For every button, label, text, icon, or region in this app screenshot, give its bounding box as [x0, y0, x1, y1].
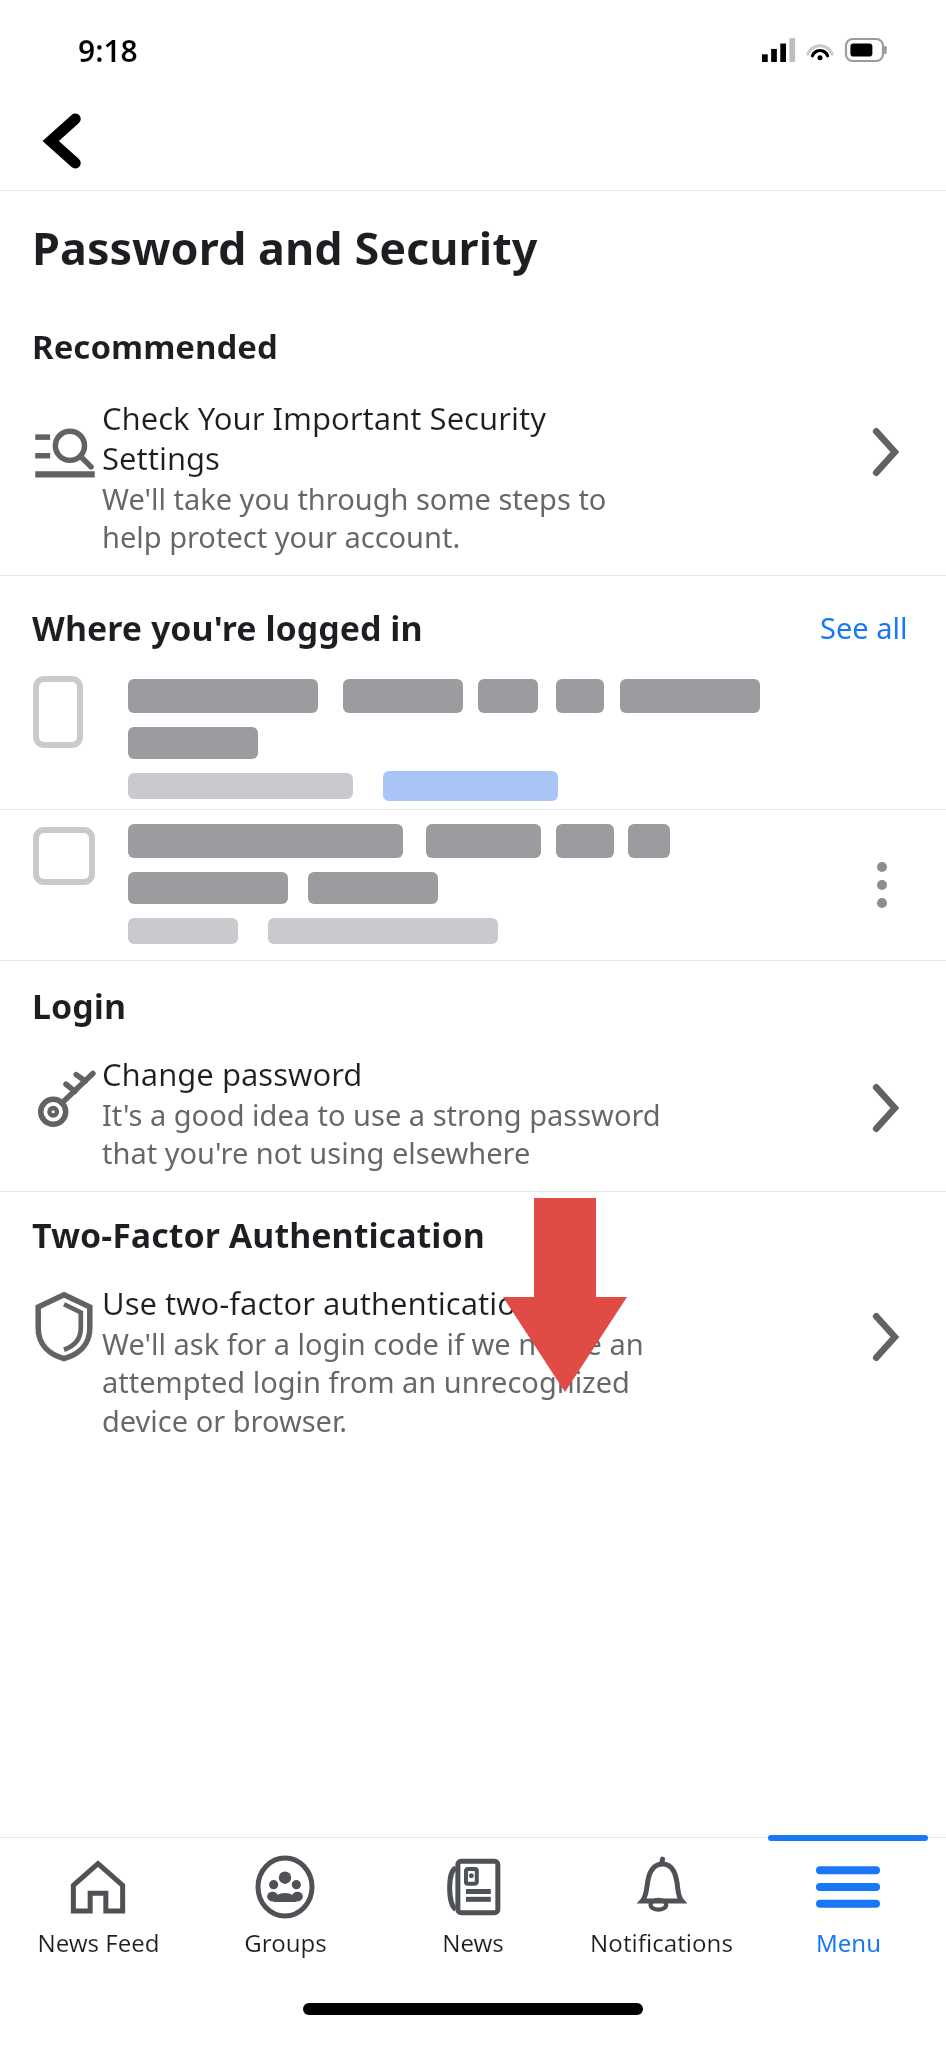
button[interactable]: See all [814, 602, 914, 653]
staticText: 9:18 [78, 30, 138, 71]
button[interactable]: News [383, 1852, 563, 1963]
button[interactable]: News Feed [8, 1852, 188, 1963]
button[interactable]: Menu [758, 1852, 938, 1963]
button[interactable]: Change password [0, 1047, 946, 1191]
staticText: Use two-factor authentication [102, 1282, 536, 1324]
staticText: We'll take you through some steps to hel… [102, 479, 607, 557]
button[interactable]: Notifications [571, 1852, 751, 1963]
staticText: Password and Security [32, 217, 538, 278]
staticText: Two-Factor Authentication [32, 1212, 485, 1258]
button[interactable]: Check Your Important Security Settings [0, 391, 946, 575]
staticText: Check Your Important Security Settings [102, 397, 546, 479]
staticText: Where you're logged in [32, 605, 814, 651]
staticText: News [442, 1926, 504, 1959]
button[interactable]: Use two-factor authentication [0, 1276, 946, 1459]
button[interactable]: More options [854, 857, 910, 913]
staticText: Menu [816, 1926, 881, 1959]
staticText: Notifications [590, 1926, 733, 1959]
button[interactable]: Groups [195, 1852, 375, 1963]
staticText: Groups [244, 1926, 327, 1959]
staticText: See all [820, 608, 908, 647]
staticText: News Feed [37, 1926, 160, 1959]
staticText: Recommended [32, 324, 278, 369]
button[interactable]: Back [24, 102, 102, 180]
button[interactable]: More options [0, 810, 946, 960]
button[interactable] [0, 661, 946, 809]
staticText: We'll ask for a login code if we notice … [102, 1324, 644, 1441]
staticText: Login [32, 983, 127, 1029]
staticText: Change password [102, 1053, 363, 1095]
staticText: It's a good idea to use a strong passwor… [102, 1095, 661, 1173]
